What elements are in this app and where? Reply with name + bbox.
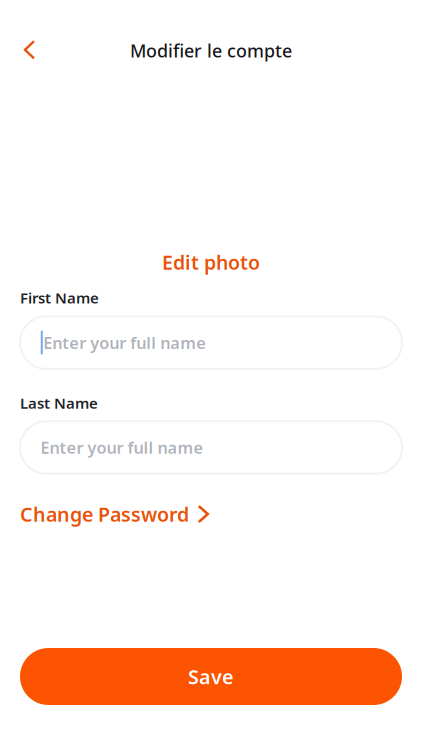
staticText: Edit photo [162,249,260,275]
button[interactable]: Back [10,31,48,69]
button[interactable]: Save [20,648,402,705]
staticText: First Name [20,287,99,308]
staticText: Enter your full name [43,331,206,354]
staticText: Last Name [20,393,98,413]
staticText: Change Password [20,501,189,527]
staticText: Enter your full name [40,436,203,459]
button[interactable]: Change Password [20,501,402,527]
staticText: Save [188,663,234,690]
button[interactable]: Edit photo [162,249,260,275]
staticText: Modifier le compte [130,38,292,63]
